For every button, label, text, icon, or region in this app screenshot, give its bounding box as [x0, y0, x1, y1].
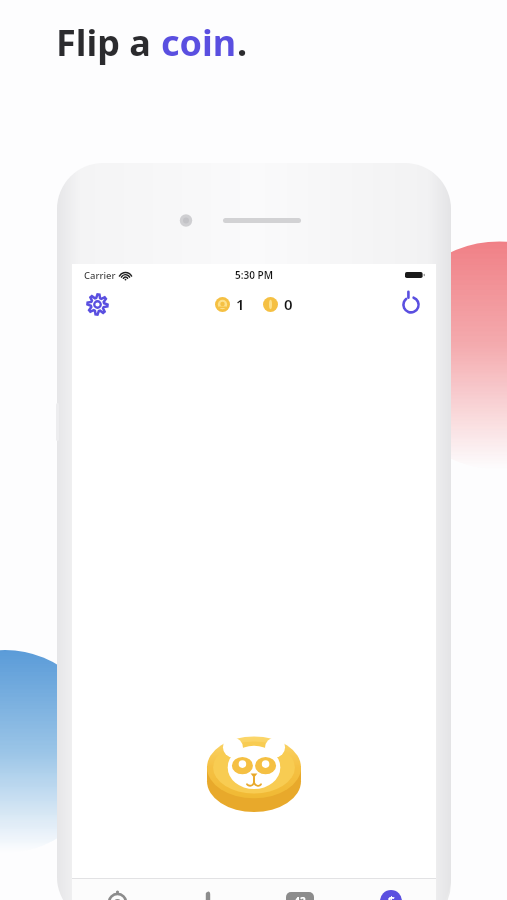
button[interactable]: Reset	[394, 287, 428, 321]
button[interactable]: Settings	[80, 287, 114, 321]
staticText: Carrier	[84, 269, 116, 282]
staticText: $	[388, 893, 395, 900]
button[interactable]: Bet	[345, 879, 436, 900]
staticText: Flip a	[56, 18, 161, 67]
button[interactable]: Coin	[72, 879, 163, 900]
button[interactable]: Flip coin	[204, 733, 304, 819]
staticText: coin	[161, 18, 237, 67]
staticText: 1	[236, 294, 245, 314]
staticText: 42	[294, 894, 306, 900]
staticText: 0	[284, 294, 293, 314]
staticText: 5:30 PM	[235, 268, 273, 282]
button[interactable]: 0	[263, 294, 293, 314]
staticText: .	[237, 18, 248, 67]
button[interactable]: 1	[215, 294, 245, 314]
button[interactable]: 42	[254, 879, 345, 900]
button[interactable]: Tap	[163, 879, 254, 900]
